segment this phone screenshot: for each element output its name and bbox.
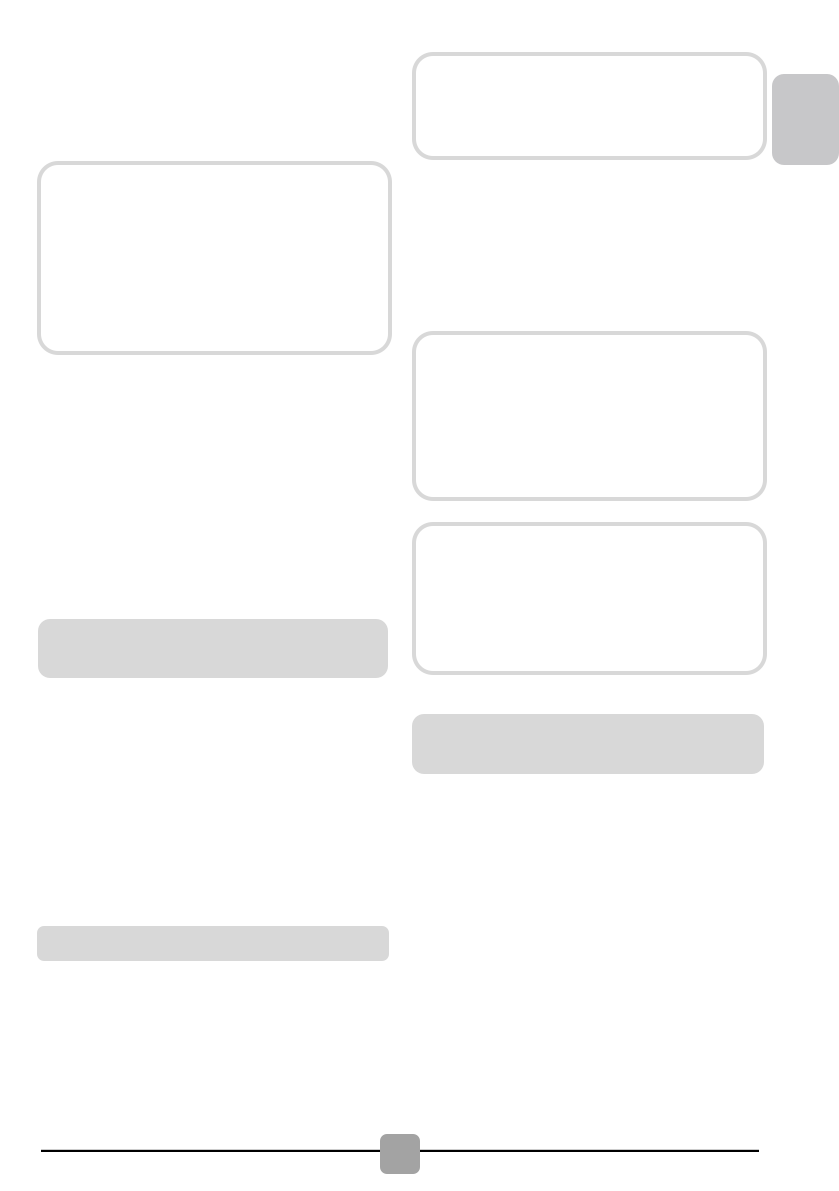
button[interactable]: Message [412, 331, 767, 501]
button[interactable]: Message [412, 52, 767, 160]
button[interactable]: Message [412, 522, 767, 675]
button[interactable]: Message [37, 161, 392, 355]
button[interactable]: Compose [380, 1134, 420, 1174]
